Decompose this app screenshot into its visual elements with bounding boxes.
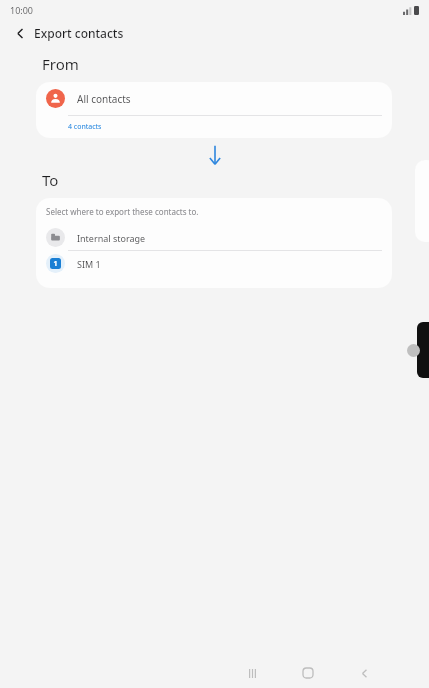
staticText: From — [42, 54, 79, 74]
button[interactable]: Recents — [235, 658, 269, 688]
button[interactable]: Back — [347, 658, 381, 688]
staticText: 10:00 — [10, 4, 34, 16]
staticText: Internal storage — [77, 232, 146, 244]
button[interactable]: All contacts — [36, 82, 392, 138]
button[interactable]: 1 — [36, 251, 392, 276]
staticText: SIM 1 — [77, 258, 101, 270]
button[interactable]: Home — [291, 658, 325, 688]
button[interactable]: Back — [10, 23, 30, 43]
staticText: To — [42, 170, 59, 190]
button[interactable]: Internal storage — [36, 225, 392, 250]
staticText: 4 contacts — [68, 122, 102, 132]
button[interactable]: Edge panel — [417, 322, 429, 378]
staticText: All contacts — [77, 92, 131, 106]
staticText: Export contacts — [34, 25, 124, 41]
staticText: 1 — [53, 259, 58, 269]
staticText: Select where to export these contacts to… — [46, 206, 199, 217]
